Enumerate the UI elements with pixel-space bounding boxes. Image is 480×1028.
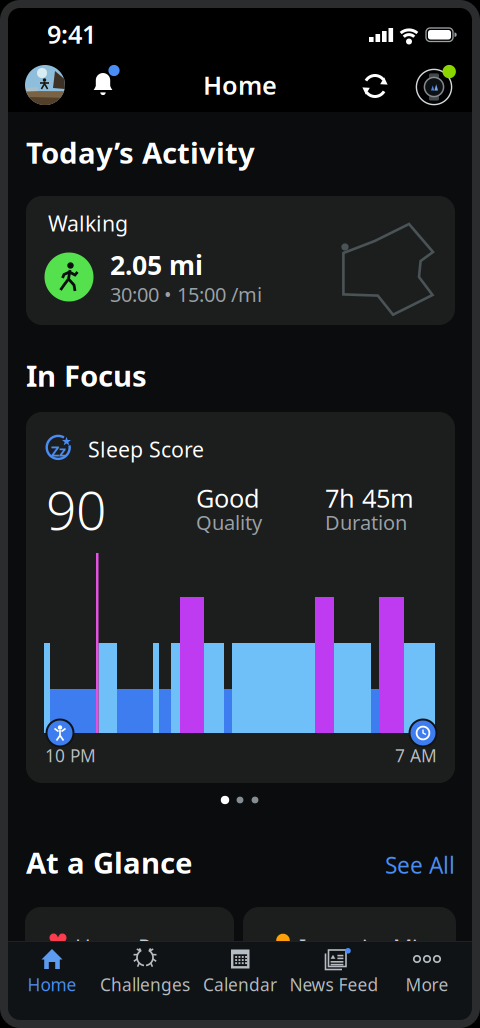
staticText: Quality [196, 509, 262, 536]
button[interactable]: See All [385, 850, 455, 880]
button[interactable]: More [379, 946, 475, 1012]
staticText: 30:00 • 15:00 /mi [110, 281, 262, 308]
button[interactable]: Walking [26, 196, 455, 325]
staticText: More [405, 973, 448, 996]
staticText: 9:41 [47, 17, 96, 51]
staticText: In Focus [26, 356, 147, 395]
staticText: News Feed [289, 973, 378, 996]
button[interactable]: Notifications [86, 64, 122, 104]
button[interactable]: Profile [25, 65, 65, 105]
staticText: Calendar [203, 973, 277, 996]
staticText: Sleep Score [88, 435, 204, 463]
button[interactable]: Intensity Minutes [243, 907, 456, 977]
staticText: 10 PM [45, 744, 96, 767]
button[interactable]: Zz [26, 412, 455, 783]
staticText: Duration [325, 509, 407, 536]
staticText: Home [203, 68, 277, 102]
staticText: Heart Rate [75, 933, 183, 961]
staticText: 90 [46, 474, 106, 545]
button[interactable]: News Feed [286, 946, 382, 1012]
button[interactable]: Challenges [97, 946, 193, 1012]
button[interactable]: Calendar [192, 946, 288, 1012]
staticText: See All [385, 850, 455, 880]
staticText: Good [196, 481, 260, 515]
staticText: Intensity Minutes [299, 933, 474, 961]
staticText: Today’s Activity [26, 133, 255, 172]
staticText: Zz [51, 441, 66, 460]
staticText: Home [27, 973, 76, 996]
button[interactable]: Home [4, 946, 100, 1012]
staticText: At a Glance [26, 843, 193, 882]
button[interactable]: Sync [357, 68, 393, 104]
staticText: Walking [48, 209, 128, 237]
staticText: Challenges [100, 973, 190, 996]
staticText: 2.05 mi [110, 247, 203, 282]
button[interactable]: Heart Rate [25, 907, 234, 977]
button[interactable]: Device [412, 63, 458, 107]
staticText: 7h 45m [325, 481, 414, 515]
staticText: 7 AM [395, 744, 437, 767]
